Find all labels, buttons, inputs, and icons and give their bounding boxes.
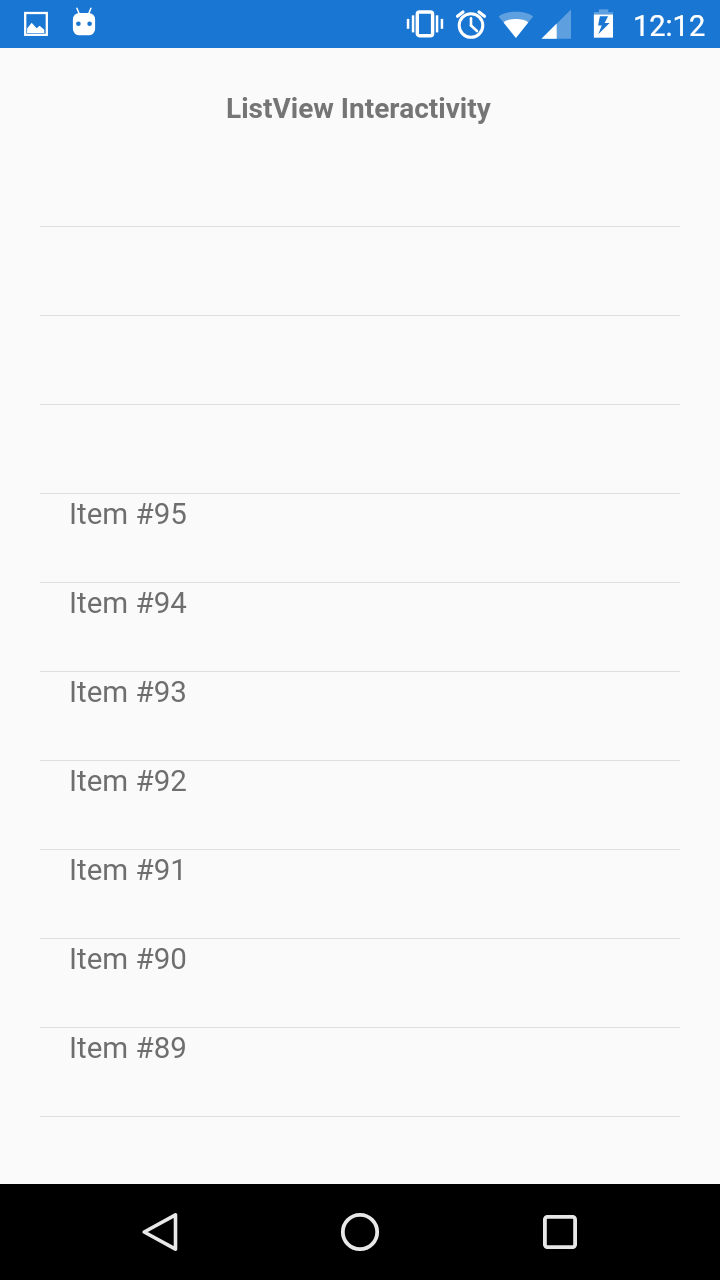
staticText: Item #89 — [69, 1031, 187, 1066]
staticText: Item #90 — [69, 942, 187, 977]
staticText: Item #91 — [69, 853, 187, 888]
button[interactable]: Back — [112, 1184, 208, 1280]
button[interactable]: Home — [312, 1184, 408, 1280]
button[interactable]: Item #89 — [0, 1028, 720, 1117]
button[interactable]: Item #91 — [0, 850, 720, 939]
button[interactable]: Recent apps — [512, 1184, 608, 1280]
staticText: ListView Interactivity — [226, 92, 491, 125]
staticText: Item #93 — [69, 675, 187, 710]
staticText: Item #92 — [69, 764, 187, 799]
staticText: 12:12 — [633, 9, 706, 43]
staticText: Item #95 — [69, 497, 187, 532]
button[interactable]: Item #94 — [0, 583, 720, 672]
button[interactable]: Item #90 — [0, 939, 720, 1028]
button[interactable]: Item #95 — [0, 494, 720, 583]
button[interactable]: Item #92 — [0, 761, 720, 850]
button[interactable]: Item #93 — [0, 672, 720, 761]
staticText: Item #94 — [69, 586, 187, 621]
